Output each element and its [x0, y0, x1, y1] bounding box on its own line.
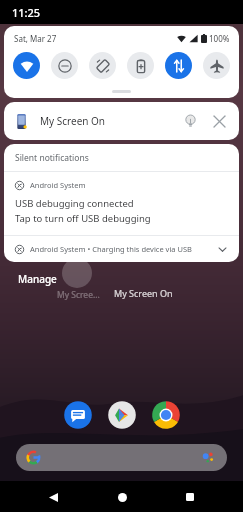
button[interactable]: Mobile data	[165, 52, 192, 79]
button[interactable]: Toggle screen on	[180, 111, 200, 131]
button[interactable]: Wi-Fi	[13, 52, 40, 79]
staticText: My Scree...	[57, 289, 100, 301]
staticText: Android System	[30, 180, 86, 190]
button[interactable]: Airplane mode	[203, 52, 230, 79]
button[interactable]: Do Not Disturb	[51, 52, 78, 79]
button[interactable]: Search	[16, 444, 227, 471]
button[interactable]: Dismiss	[209, 111, 229, 131]
button[interactable]: Play Store	[107, 400, 137, 430]
button[interactable]: Expand	[216, 243, 229, 256]
staticText: 11:25	[12, 5, 41, 20]
button[interactable]: Battery Saver	[127, 52, 154, 79]
staticText: Silent notifications	[15, 152, 89, 164]
staticText: Tap to turn off USB debugging	[15, 212, 151, 225]
staticText: USB debugging connected	[15, 197, 134, 210]
button[interactable]: My Screen On	[4, 102, 239, 140]
button[interactable]: Android System	[4, 172, 239, 235]
button[interactable]: Sat, Mar 27	[14, 33, 57, 44]
button[interactable]: Chrome	[151, 400, 181, 430]
button[interactable]: Home	[107, 482, 137, 512]
staticText: Android System • Charging this device vi…	[30, 244, 192, 254]
button[interactable]: Back	[38, 482, 68, 512]
staticText: My Screen On	[40, 114, 106, 128]
staticText: 100%	[209, 33, 230, 44]
button[interactable]: Manage	[18, 272, 57, 286]
staticText: My Screen On	[114, 287, 173, 299]
button[interactable]: Recents	[175, 482, 205, 512]
button[interactable]: Messages	[63, 400, 93, 430]
button[interactable]: Android System • Charging this device vi…	[4, 236, 239, 262]
button[interactable]: Silent notifications	[4, 144, 239, 171]
button[interactable]: Auto-rotate	[89, 52, 116, 79]
